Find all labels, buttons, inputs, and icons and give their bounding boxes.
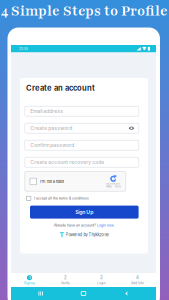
staticText: Signup [24,281,35,285]
staticText: Already have an account? [54,223,96,227]
button[interactable]: 1 [11,274,47,285]
button[interactable]: Login now [97,223,114,227]
staticText: Privacy - Terms [106,185,121,188]
staticText: Create password [30,125,72,131]
staticText: Add Info [131,281,144,285]
staticText: 4 [136,275,139,280]
staticText: reCAPTCHA [106,183,120,185]
staticText: Email address [30,108,63,114]
staticText: Confirm password [30,142,74,148]
staticText: Login now [97,223,114,227]
staticText: Sign Up [75,209,93,215]
button[interactable]: Back [113,287,139,300]
staticText: T [59,231,63,239]
staticText: I accept all the terms & conditions [34,196,89,200]
staticText: 4 Simple Steps to Profile [1,1,168,21]
staticText: 2 [64,275,67,280]
button[interactable]: I accept all the terms & conditions [26,196,89,201]
button[interactable]: 4 [119,274,155,285]
button[interactable]: Sign Up [30,206,139,219]
staticText: Create an account [26,83,95,93]
button[interactable]: 2 [47,274,83,285]
staticText: 22:55 [19,47,28,51]
staticText: Powered by Thykkzone [65,232,108,237]
button[interactable]: 3 [83,274,119,285]
staticText: Login [97,281,106,285]
button[interactable]: Home [70,287,96,300]
staticText: 1 [29,276,30,280]
staticText: Verify [61,281,70,285]
staticText: Create account recovery code [30,159,104,165]
button[interactable]: Recent apps [28,287,54,300]
staticText: 3 [100,275,103,280]
staticText: I'm not a robot [40,179,64,184]
